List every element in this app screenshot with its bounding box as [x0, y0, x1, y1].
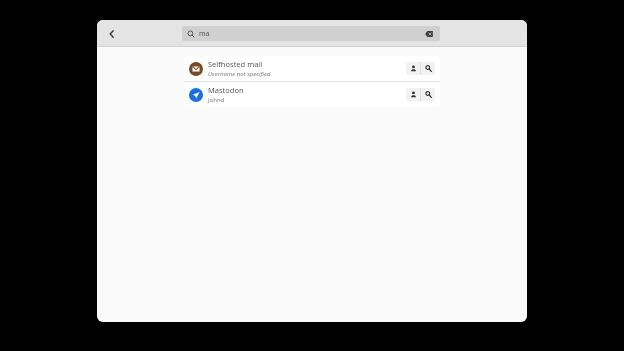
- button[interactable]: Clear search: [422, 27, 436, 41]
- staticText: ma: [199, 29, 210, 39]
- staticText: Mastodon: [208, 85, 244, 95]
- staticText: johnd: [208, 96, 225, 104]
- staticText: Selfhosted mail: [208, 59, 263, 69]
- button[interactable]: Search: [421, 88, 435, 101]
- button[interactable]: Mastodon: [184, 82, 440, 107]
- button[interactable]: Account: [406, 88, 420, 101]
- button[interactable]: Account: [406, 62, 420, 75]
- staticText: Username not specified: [208, 70, 271, 78]
- button[interactable]: ma: [182, 26, 440, 41]
- button[interactable]: Search: [421, 62, 435, 75]
- button[interactable]: Back: [97, 20, 127, 47]
- button[interactable]: Selfhosted mail: [184, 56, 440, 81]
